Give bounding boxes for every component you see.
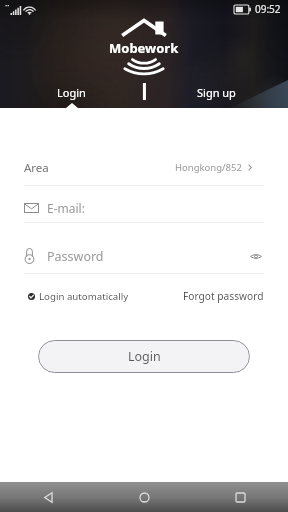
button[interactable]: Sign up	[173, 80, 259, 108]
button[interactable]: Password	[24, 240, 264, 272]
button[interactable]: Show password	[246, 246, 266, 266]
staticText: Mobework	[109, 39, 179, 57]
staticText: Area	[24, 160, 49, 176]
button[interactable]: Forgot password	[183, 288, 264, 304]
button[interactable]: Login	[28, 80, 115, 108]
staticText: Hongkong/852	[175, 161, 242, 174]
button[interactable]: Back	[0, 482, 96, 512]
staticText: Sign up	[197, 85, 236, 100]
staticText: Password	[47, 248, 104, 265]
button[interactable]: E-mail:	[24, 192, 264, 224]
staticText: Forgot password	[183, 289, 264, 303]
staticText: Login	[57, 85, 86, 100]
button[interactable]: Login	[38, 340, 250, 373]
button[interactable]: Login automatically	[28, 288, 129, 304]
button[interactable]: Area	[24, 150, 264, 185]
staticText: E-mail:	[47, 200, 85, 216]
staticText: 09:52	[255, 2, 281, 16]
button[interactable]: Recents	[192, 482, 288, 512]
staticText: Login automatically	[39, 290, 129, 303]
button[interactable]: Home	[96, 482, 192, 512]
staticText: Login	[128, 348, 161, 365]
